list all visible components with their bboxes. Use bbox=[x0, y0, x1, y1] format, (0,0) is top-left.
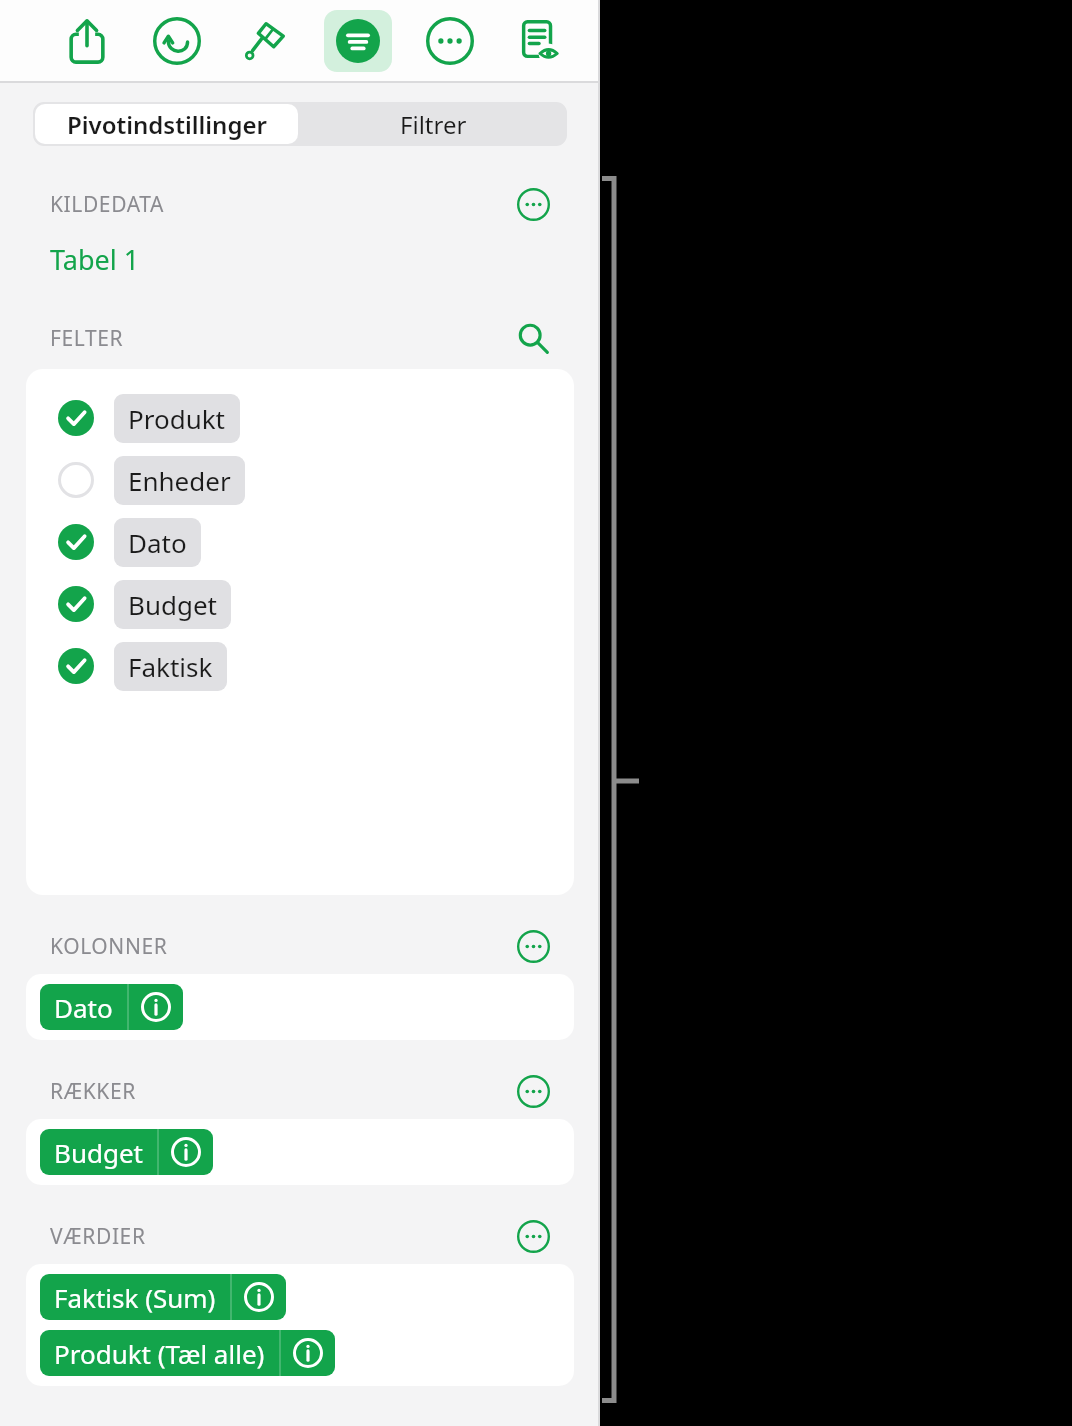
button[interactable]: Tabel 1 bbox=[50, 241, 140, 278]
button[interactable]: Pivotindstillinger bbox=[35, 104, 298, 144]
button[interactable]: Budget bbox=[26, 573, 574, 635]
button[interactable]: More options bbox=[512, 925, 554, 967]
button[interactable]: Dato bbox=[40, 984, 183, 1030]
button[interactable]: Organise bbox=[324, 10, 392, 72]
staticText: FELTER bbox=[50, 324, 124, 353]
button[interactable]: Filtrer bbox=[300, 102, 567, 146]
button[interactable]: Format bbox=[235, 10, 297, 72]
staticText: Budget bbox=[128, 587, 217, 622]
button[interactable]: Enheder bbox=[26, 449, 574, 511]
button[interactable]: Dato bbox=[26, 511, 574, 573]
staticText: Faktisk bbox=[128, 649, 213, 684]
button[interactable]: Undo bbox=[146, 10, 208, 72]
staticText: Dato bbox=[54, 990, 113, 1025]
staticText: Enheder bbox=[128, 463, 231, 498]
button[interactable]: Document bbox=[508, 10, 570, 72]
staticText: Dato bbox=[128, 525, 187, 560]
button[interactable]: Faktisk (Sum) bbox=[40, 1274, 286, 1320]
button[interactable]: Faktisk bbox=[26, 635, 574, 697]
staticText: Tabel 1 bbox=[50, 241, 140, 278]
staticText: KOLONNER bbox=[50, 932, 168, 961]
button[interactable]: Search bbox=[512, 317, 554, 359]
button[interactable]: More options bbox=[512, 1215, 554, 1257]
button[interactable]: Info bbox=[159, 1129, 213, 1175]
staticText: Pivotindstillinger bbox=[67, 108, 267, 141]
staticText: Produkt bbox=[128, 401, 226, 436]
staticText: Filtrer bbox=[400, 108, 467, 141]
staticText: RÆKKER bbox=[50, 1077, 136, 1106]
button[interactable]: Produkt (Tæl alle) bbox=[40, 1330, 335, 1376]
button[interactable]: Budget bbox=[40, 1129, 213, 1175]
staticText: Faktisk (Sum) bbox=[54, 1280, 216, 1315]
staticText: KILDEDATA bbox=[50, 190, 165, 219]
button[interactable]: Produkt bbox=[26, 387, 574, 449]
button[interactable]: More options bbox=[512, 183, 554, 225]
button[interactable]: Info bbox=[281, 1330, 335, 1376]
staticText: Produkt (Tæl alle) bbox=[54, 1336, 265, 1371]
button[interactable]: Info bbox=[129, 984, 183, 1030]
button[interactable]: Share bbox=[56, 10, 118, 72]
button[interactable]: More options bbox=[512, 1070, 554, 1112]
staticText: VÆRDIER bbox=[50, 1222, 146, 1251]
button[interactable]: Info bbox=[232, 1274, 286, 1320]
staticText: Budget bbox=[54, 1135, 143, 1170]
button[interactable]: More bbox=[419, 10, 481, 72]
